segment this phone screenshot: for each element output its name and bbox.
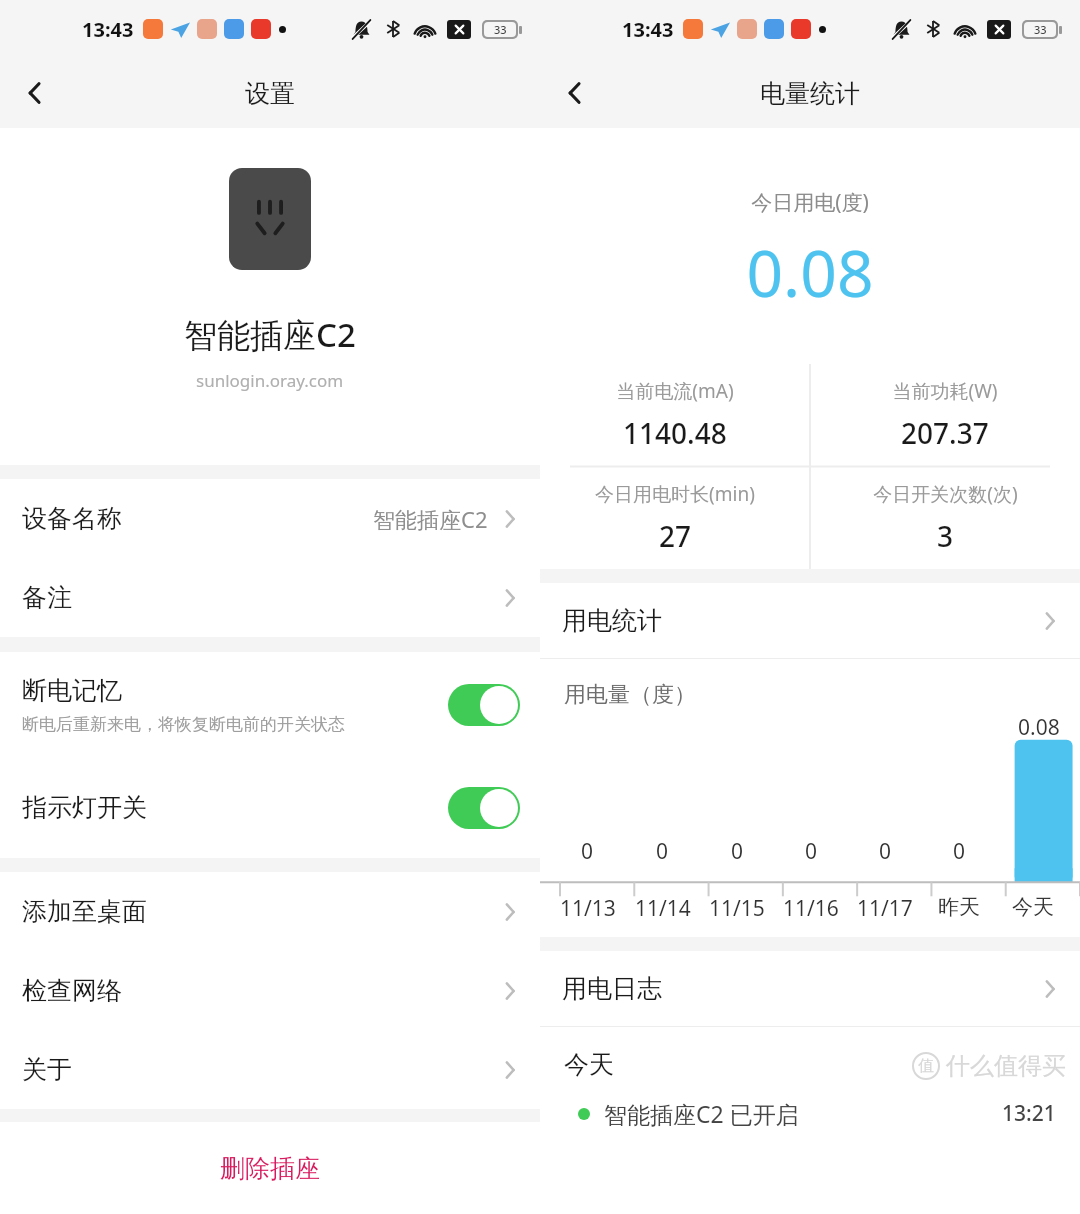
staticText: 设备名称 [22, 503, 122, 534]
staticText: 0 [953, 837, 966, 866]
button[interactable]: 关于 [0, 1030, 540, 1109]
staticText: 今天 [1012, 894, 1054, 920]
staticText: 用电统计 [562, 605, 662, 636]
button[interactable]: Back [0, 58, 70, 128]
staticText: 添加至桌面 [22, 896, 147, 927]
staticText: 用电量（度） [564, 681, 696, 709]
staticText: 3 [937, 517, 954, 555]
staticText: 智能插座C2 已开启 [604, 1098, 799, 1129]
staticText: 今日开关次数(次) [873, 481, 1018, 507]
staticText: 检查网络 [22, 975, 122, 1006]
staticText: 0 [879, 837, 892, 866]
button[interactable]: 指示灯开关 [0, 757, 540, 858]
staticText: 指示灯开关 [22, 792, 147, 823]
button[interactable]: 用电日志 [540, 951, 1080, 1026]
staticText: 关于 [22, 1054, 72, 1085]
staticText: 什么值得买 [946, 1051, 1066, 1081]
staticText: 33 [494, 22, 507, 37]
staticText: 13:43 [82, 16, 134, 43]
button[interactable]: 检查网络 [0, 951, 540, 1030]
staticText: 1140.48 [623, 414, 727, 452]
staticText: 当前功耗(W) [892, 378, 998, 404]
button[interactable]: Toggle [448, 787, 520, 829]
staticText: 今天 [564, 1049, 614, 1080]
button[interactable]: 删除插座 [0, 1122, 540, 1214]
staticText: 11/17 [857, 894, 913, 923]
staticText: 备注 [22, 582, 72, 613]
staticText: 用电日志 [562, 973, 662, 1004]
staticText: 11/13 [560, 894, 616, 923]
staticText: 0 [656, 837, 669, 866]
staticText: 设置 [245, 78, 295, 109]
staticText: 11/16 [783, 894, 839, 923]
button[interactable]: 用电统计 [540, 583, 1080, 658]
staticText: 昨天 [938, 894, 980, 920]
staticText: sunlogin.oray.com [196, 369, 344, 392]
staticText: 今日用电时长(min) [595, 481, 755, 507]
staticText: 0 [731, 837, 744, 866]
staticText: 11/14 [635, 894, 691, 923]
staticText: 207.37 [901, 414, 989, 452]
staticText: 27 [659, 517, 692, 555]
staticText: 删除插座 [220, 1153, 320, 1184]
staticText: 值 [918, 1056, 934, 1076]
staticText: 0 [805, 837, 818, 866]
staticText: 11/15 [709, 894, 765, 923]
staticText: 断电记忆 [22, 675, 122, 706]
staticText: 电量统计 [760, 78, 860, 109]
button[interactable]: Toggle [448, 684, 520, 726]
staticText: 当前电流(mA) [616, 378, 734, 404]
staticText: 智能插座C2 [373, 504, 488, 534]
button[interactable]: 添加至桌面 [0, 872, 540, 951]
staticText: 0.08 [540, 229, 1080, 316]
staticText: 0 [581, 837, 594, 866]
staticText: 33 [1034, 22, 1047, 37]
button[interactable]: Back [540, 58, 610, 128]
button[interactable]: 备注 [0, 558, 540, 637]
button[interactable]: 设备名称 [0, 479, 540, 558]
staticText: 13:43 [622, 16, 674, 43]
staticText: 今日用电(度) [540, 188, 1080, 217]
staticText: 断电后重新来电，将恢复断电前的开关状态 [22, 714, 345, 735]
button[interactable]: 断电记忆 [0, 652, 540, 757]
staticText: 13:21 [1002, 1099, 1056, 1128]
staticText: 0.08 [1018, 713, 1060, 742]
staticText: 智能插座C2 [184, 312, 356, 357]
